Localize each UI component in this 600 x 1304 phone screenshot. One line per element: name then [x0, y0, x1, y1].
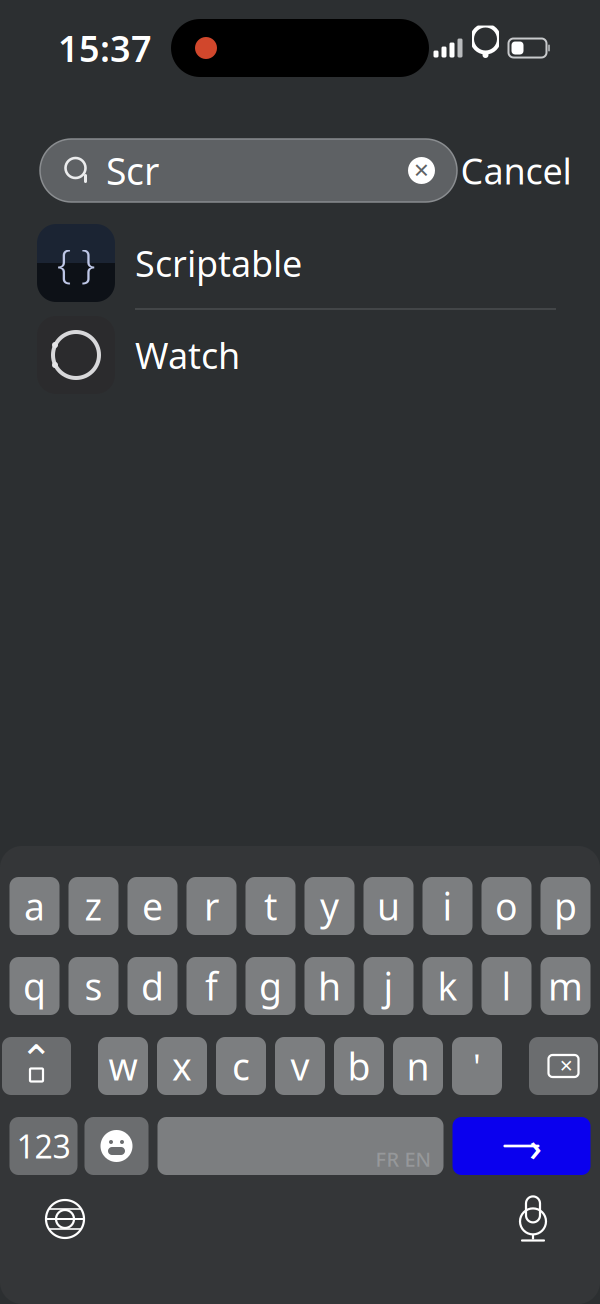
staticText: Watch [135, 331, 240, 379]
staticText: a [24, 881, 45, 931]
button[interactable]: w [98, 1037, 148, 1095]
staticText: b [347, 1041, 370, 1091]
staticText: n [406, 1041, 429, 1091]
button[interactable]: p [540, 877, 590, 935]
staticText: t [264, 881, 277, 931]
button[interactable]: z [68, 877, 118, 935]
staticText: x [172, 1041, 192, 1091]
staticText: ✕ [559, 1056, 574, 1076]
staticText: c [232, 1041, 250, 1091]
staticText: u [377, 881, 400, 931]
button[interactable]: Cancel [457, 139, 575, 202]
staticText: › [529, 1119, 542, 1172]
button[interactable]: q [9, 957, 59, 1015]
button[interactable]: x [157, 1037, 207, 1095]
button[interactable]: { } [0, 218, 600, 310]
staticText: k [437, 961, 457, 1011]
staticText: Scr [106, 146, 159, 195]
button[interactable]: Search [452, 1117, 590, 1175]
staticText: v [290, 1041, 309, 1091]
staticText: r [204, 881, 219, 931]
button[interactable]: Next keyboard [30, 1189, 100, 1249]
staticText: ⌃ [19, 1037, 53, 1082]
staticText: Cancel [460, 147, 571, 194]
button[interactable]: Delete [529, 1037, 598, 1095]
button[interactable]: d [127, 957, 177, 1015]
button[interactable]: l [481, 957, 531, 1015]
button[interactable]: m [540, 957, 590, 1015]
staticText: ' [473, 1043, 481, 1089]
button[interactable]: Emoji [84, 1117, 148, 1175]
button[interactable]: i [422, 877, 472, 935]
staticText: z [84, 881, 102, 931]
staticText: e [142, 881, 163, 931]
button[interactable]: Space [157, 1117, 443, 1175]
staticText: w [108, 1041, 137, 1091]
button[interactable]: j [363, 957, 413, 1015]
staticText: 123 [16, 1125, 70, 1167]
button[interactable]: v [275, 1037, 325, 1095]
button[interactable]: y [304, 877, 354, 935]
staticText: { } [57, 236, 95, 289]
staticText: y [320, 881, 339, 931]
staticText: h [318, 961, 341, 1011]
button[interactable]: c [216, 1037, 266, 1095]
staticText: d [141, 961, 164, 1011]
button[interactable]: o [481, 877, 531, 935]
button[interactable]: 123 [9, 1117, 77, 1175]
button[interactable]: r [186, 877, 236, 935]
staticText: i [442, 881, 452, 931]
button[interactable]: h [304, 957, 354, 1015]
staticText: q [23, 961, 46, 1011]
button[interactable]: Watch [0, 310, 600, 402]
staticText: p [554, 881, 577, 931]
staticText: Scriptable [135, 239, 302, 287]
button[interactable]: g [245, 957, 295, 1015]
staticText: m [548, 961, 583, 1011]
button[interactable]: Scr [40, 139, 457, 202]
button[interactable]: a [9, 877, 59, 935]
button[interactable]: t [245, 877, 295, 935]
staticText: j [383, 961, 393, 1011]
staticText: 15:37 [58, 24, 152, 72]
button[interactable]: ' [452, 1037, 502, 1095]
button[interactable]: b [334, 1037, 384, 1095]
button[interactable]: Shift [2, 1037, 71, 1095]
button[interactable]: s [68, 957, 118, 1015]
staticText: f [205, 961, 218, 1011]
staticText: ✕ [413, 159, 430, 182]
button[interactable]: Dictation [498, 1189, 568, 1249]
staticText: s [84, 961, 102, 1011]
button[interactable]: u [363, 877, 413, 935]
button[interactable]: e [127, 877, 177, 935]
staticText: l [501, 961, 511, 1011]
staticText: o [495, 881, 518, 931]
staticText: FR EN [375, 1146, 431, 1172]
button[interactable]: n [393, 1037, 443, 1095]
staticText: g [259, 961, 282, 1011]
button[interactable]: f [186, 957, 236, 1015]
button[interactable]: k [422, 957, 472, 1015]
